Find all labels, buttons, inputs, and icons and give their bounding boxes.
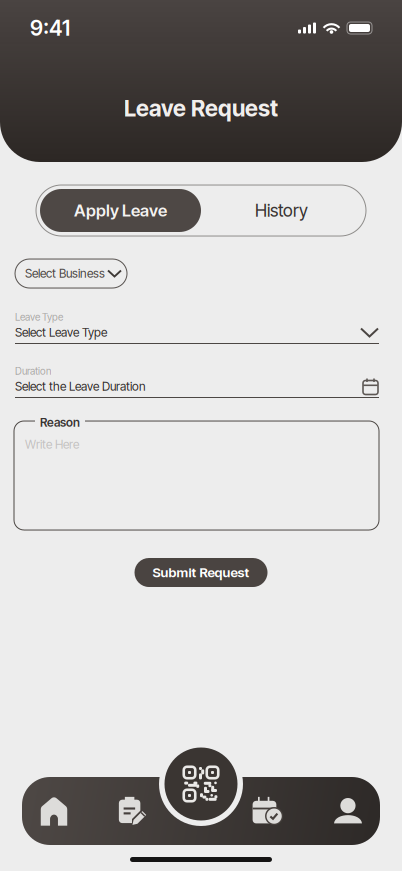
staticText: History bbox=[255, 200, 308, 221]
button[interactable]: Scan QR code bbox=[159, 742, 243, 826]
button[interactable]: Home bbox=[27, 777, 81, 845]
staticText: Select Business bbox=[25, 266, 105, 281]
staticText: Submit Request bbox=[152, 564, 249, 580]
button[interactable]: Profile bbox=[321, 777, 375, 845]
button[interactable]: Attendance bbox=[242, 777, 296, 845]
button[interactable]: Apply Leave bbox=[40, 189, 201, 232]
button[interactable]: Submit Request bbox=[134, 558, 267, 587]
button[interactable]: Duration bbox=[15, 365, 379, 398]
button[interactable]: Select Business bbox=[15, 259, 127, 288]
staticText: Reason bbox=[40, 415, 80, 429]
staticText: Leave Request bbox=[124, 95, 278, 122]
button[interactable]: Requests bbox=[106, 777, 160, 845]
button[interactable]: History bbox=[201, 189, 362, 232]
staticText: Select the Leave Duration bbox=[15, 379, 146, 394]
button[interactable]: Leave Type bbox=[15, 311, 379, 344]
staticText: Leave Type bbox=[15, 311, 63, 323]
staticText: Select Leave Type bbox=[15, 325, 107, 340]
staticText: Apply Leave bbox=[74, 200, 167, 221]
staticText: Write Here bbox=[25, 437, 79, 451]
staticText: Duration bbox=[15, 365, 51, 377]
staticText: 9:41 bbox=[30, 15, 70, 41]
